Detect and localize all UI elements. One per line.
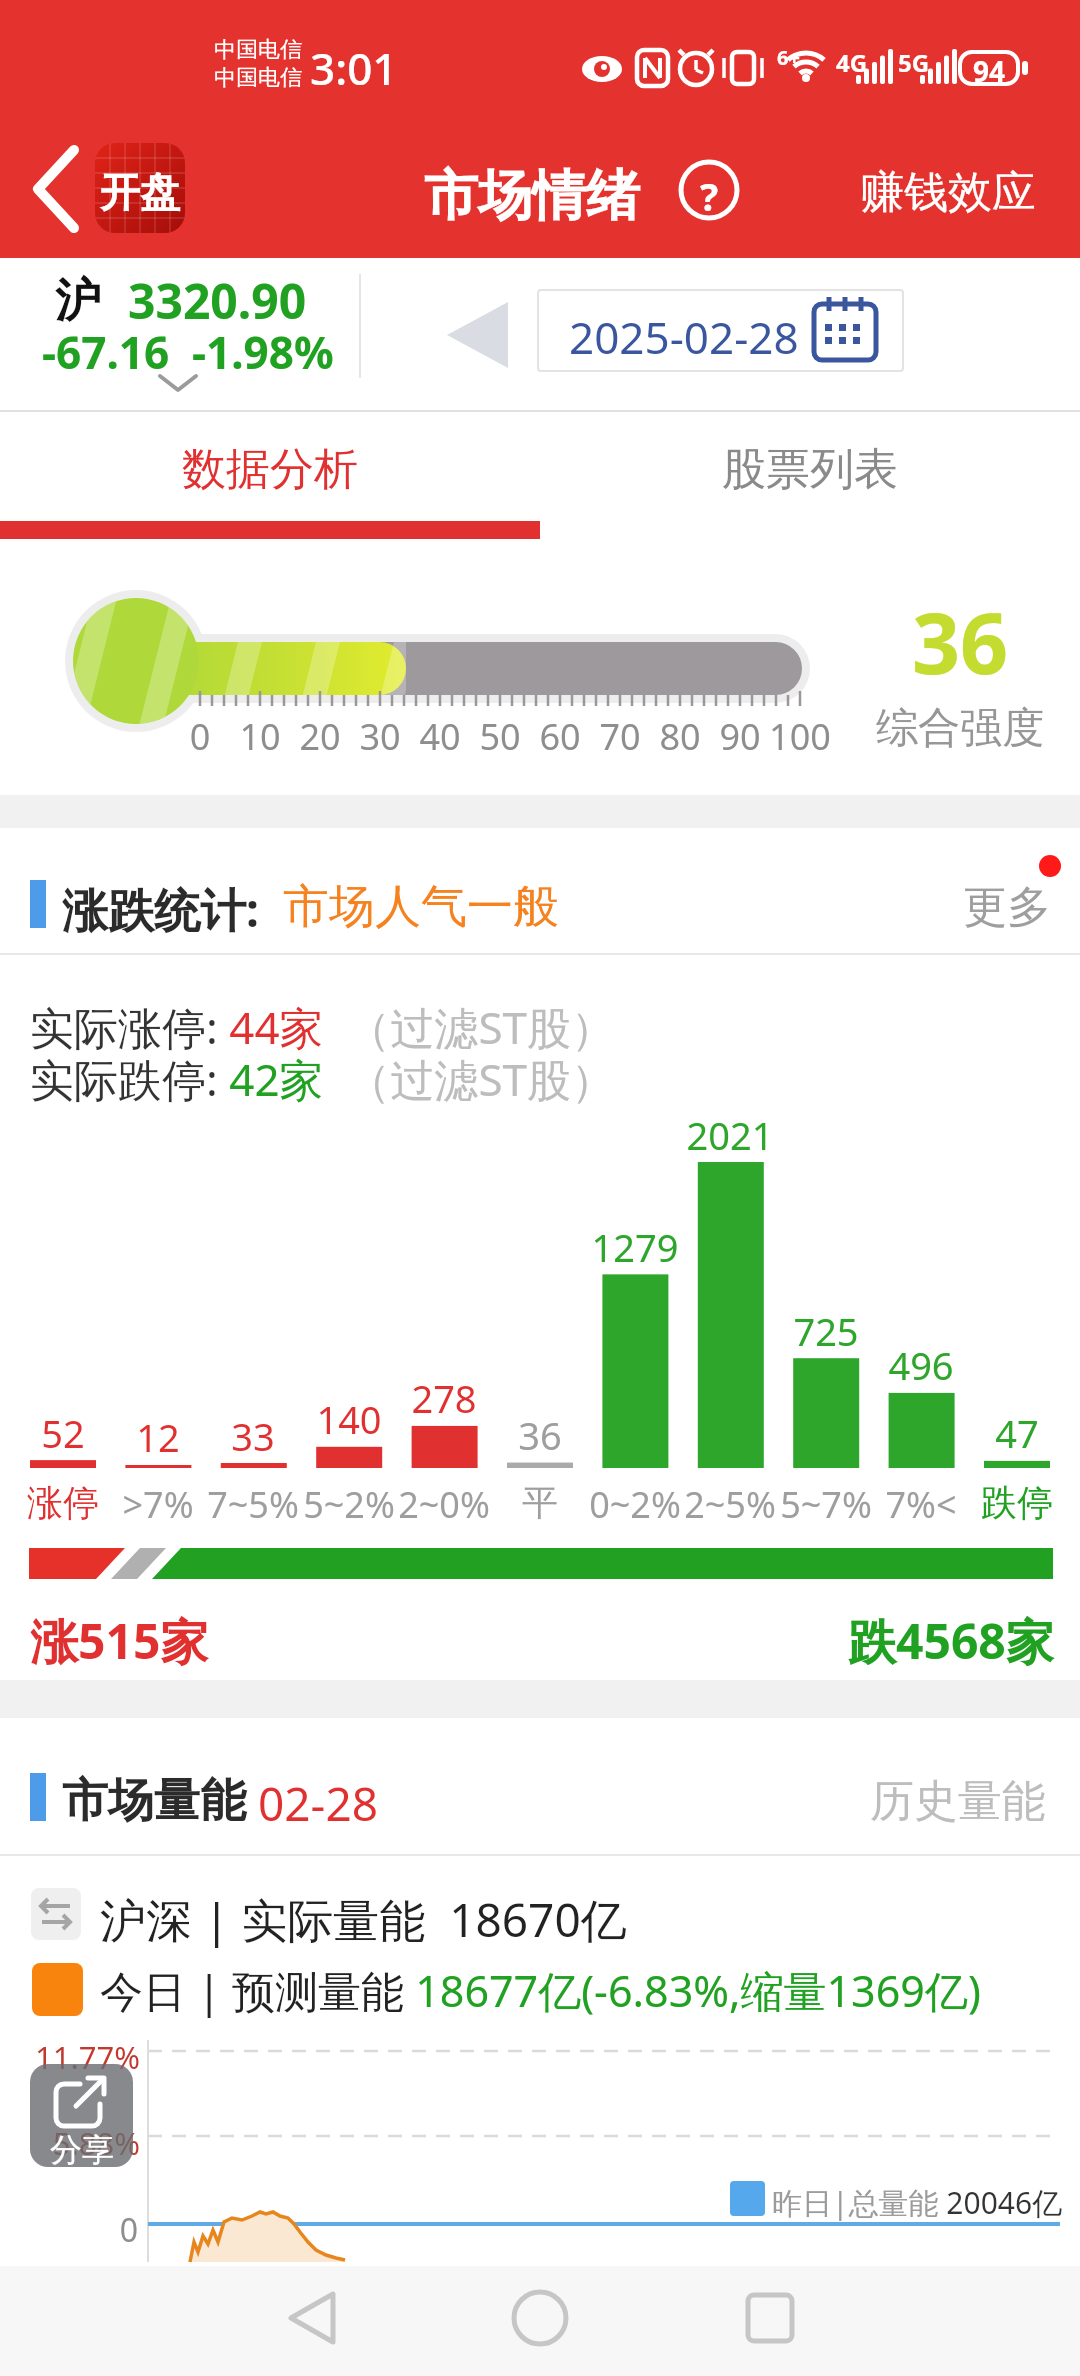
staticText: 涨停	[0, 1480, 133, 1525]
staticText: 股票列表	[722, 442, 898, 497]
staticText: 历史量能	[870, 1774, 1046, 1829]
staticText: 3:01	[310, 38, 398, 98]
staticText: 94	[962, 52, 1016, 90]
staticText: 市场量能	[62, 1772, 246, 1830]
staticText: 昨日|总量能 20046亿	[772, 2182, 1063, 2223]
button[interactable]: 2025-02-28	[537, 289, 904, 372]
staticText: 5G	[898, 46, 930, 79]
button[interactable]: 股票列表	[540, 410, 1080, 518]
staticText: 12	[88, 1411, 228, 1463]
staticText: 实际涨停: 44家 （过滤ST股）	[30, 997, 616, 1057]
staticText: 7~5%	[183, 1480, 323, 1529]
staticText: 725	[756, 1305, 896, 1357]
staticText: 496	[851, 1339, 991, 1391]
staticText: 2~5%	[660, 1480, 800, 1529]
staticText: 7%<	[851, 1480, 991, 1529]
staticText: 2021	[660, 1109, 800, 1161]
staticText: -67.16 -1.98%	[42, 322, 334, 382]
staticText: 40	[400, 712, 480, 761]
staticText: 市场情绪	[424, 162, 640, 230]
staticText: 5.88%	[10, 2122, 140, 2164]
button[interactable]: 更多	[950, 868, 1060, 938]
staticText: 跌停	[947, 1480, 1080, 1525]
staticText: 沪	[55, 272, 101, 330]
staticText: 47	[947, 1407, 1080, 1459]
staticText: 涨跌统计:	[62, 878, 259, 941]
staticText: 80	[640, 712, 720, 761]
staticText: 1279	[565, 1221, 705, 1273]
staticText: 60	[520, 712, 600, 761]
staticText: >7%	[88, 1480, 228, 1529]
staticText: 278	[374, 1372, 514, 1424]
staticText: 中国电信	[214, 36, 302, 64]
staticText: 10	[220, 712, 300, 761]
staticText: 沪深 | 实际量能 18670亿	[100, 1888, 627, 1951]
staticText: 跌4568家	[848, 1608, 1054, 1674]
staticText: 36	[880, 584, 1040, 698]
button[interactable]	[260, 2276, 380, 2366]
staticText: 实际跌停: 42家 （过滤ST股）	[30, 1049, 616, 1109]
staticText: 今日 | 预测量能 18677亿(-6.83%,缩量1369亿)	[100, 1961, 981, 2020]
staticText: 11.77%	[10, 2036, 140, 2078]
staticText: 平	[470, 1480, 610, 1525]
staticText: 50	[460, 712, 540, 761]
staticText: 综合强度	[860, 702, 1060, 755]
staticText: 2~0%	[374, 1480, 514, 1529]
staticText: 140	[279, 1393, 419, 1445]
staticText: 20	[280, 712, 360, 761]
staticText: 30	[340, 712, 420, 761]
staticText: 开盘	[100, 167, 180, 217]
staticText: 33	[183, 1410, 323, 1462]
staticText: 70	[580, 712, 660, 761]
staticText: 5~2%	[279, 1480, 419, 1529]
staticText: 5~7%	[756, 1480, 896, 1529]
staticText: 52	[0, 1407, 133, 1459]
staticText: 0~2%	[565, 1480, 705, 1529]
button[interactable]: 数据分析	[0, 410, 540, 518]
staticText: 2025-02-28	[569, 307, 799, 367]
staticText: 90	[700, 712, 780, 761]
staticText: 涨515家	[30, 1608, 209, 1674]
staticText: 02-28	[258, 1772, 379, 1835]
staticText: 36	[470, 1409, 610, 1461]
staticText: 市场人气一般	[283, 878, 559, 936]
staticText: 6+	[777, 44, 800, 71]
staticText: 赚钱效应	[860, 165, 1036, 220]
staticText: 中国电信	[214, 64, 302, 92]
button[interactable]	[700, 2276, 820, 2366]
button[interactable]: 开盘	[95, 143, 185, 233]
staticText: 0	[100, 2208, 138, 2252]
button[interactable]: 分享	[30, 2064, 133, 2167]
staticText: 4G	[836, 46, 868, 79]
staticText: 100	[760, 712, 840, 761]
staticText: 更多	[963, 880, 1051, 935]
staticText: 3320.90	[128, 268, 307, 333]
staticText: 数据分析	[182, 442, 358, 497]
button[interactable]	[480, 2276, 600, 2366]
staticText: 0	[160, 712, 240, 761]
staticText: 分享	[50, 2130, 114, 2167]
button[interactable]: 赚钱效应	[860, 165, 1050, 220]
staticText: ?	[697, 170, 721, 222]
